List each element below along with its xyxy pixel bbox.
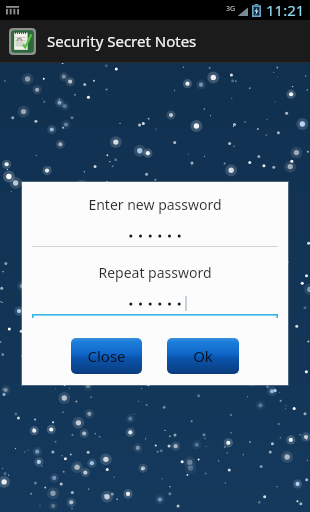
staticText: Security Secret Notes <box>47 31 197 51</box>
staticText: Ok <box>193 346 213 366</box>
staticText: Close <box>87 346 126 366</box>
staticText: 3G <box>226 4 236 14</box>
button[interactable]: Ok <box>167 338 239 374</box>
staticText: Repeat password <box>98 263 212 282</box>
staticText: 11:21 <box>266 0 305 20</box>
other: App icon <box>9 28 36 55</box>
staticText: Enter new password <box>88 195 222 214</box>
button[interactable]: Close <box>71 338 142 374</box>
